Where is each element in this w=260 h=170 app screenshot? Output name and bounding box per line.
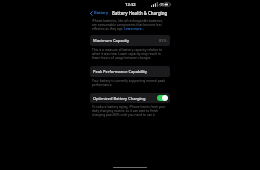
button[interactable]: Optimized Battery Charging <box>90 93 170 103</box>
staticText: iPhone batteries, like all rechargeable … <box>92 19 168 31</box>
button[interactable]: Peak Performance Capability <box>90 66 170 77</box>
staticText: 83% <box>159 38 167 43</box>
staticText: Battery <box>94 10 109 16</box>
staticText: This is a measure of battery capacity re… <box>92 48 168 60</box>
staticText: Optimized Battery Charging <box>93 96 146 101</box>
staticText: Battery Health & Charging <box>112 10 168 16</box>
staticText: Maximum Capacity <box>93 38 129 43</box>
button[interactable]: Back to Battery <box>90 10 109 16</box>
button[interactable]: Optimized Battery Charging on <box>157 95 168 101</box>
staticText: To reduce battery aging, iPhone learns f… <box>92 105 168 117</box>
button[interactable]: Maximum Capacity <box>90 35 170 46</box>
staticText: Peak Performance Capability <box>93 69 148 74</box>
staticText: 12:32 <box>125 2 136 8</box>
staticText: Your battery is currently supporting nor… <box>92 79 168 87</box>
